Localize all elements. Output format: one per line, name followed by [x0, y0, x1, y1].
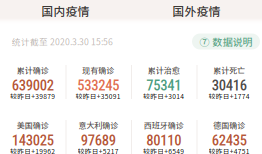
- staticText: 数据说明: [212, 34, 252, 49]
- staticText: 较昨日+1774: [209, 91, 250, 101]
- staticText: 较昨日+4751: [209, 146, 250, 154]
- staticText: 较昨日+19962: [10, 146, 55, 154]
- staticText: 80110: [146, 132, 181, 149]
- staticText: 30416: [212, 77, 247, 94]
- staticText: 639002: [12, 77, 54, 94]
- staticText: 62435: [212, 132, 247, 149]
- staticText: 国内疫情: [41, 2, 89, 19]
- staticText: 西班牙确诊: [144, 119, 184, 131]
- staticText: 97689: [81, 132, 116, 149]
- staticText: 美国确诊: [17, 119, 49, 131]
- button[interactable]: ⑦: [192, 33, 260, 49]
- staticText: 累计死亡: [213, 64, 245, 76]
- staticText: 533245: [77, 77, 119, 94]
- staticText: 意大利确诊: [78, 119, 118, 131]
- staticText: 较昨日+5217: [78, 146, 119, 154]
- staticText: 现有确诊: [82, 64, 114, 76]
- staticText: 德国确诊: [213, 119, 245, 131]
- staticText: 较昨日+6549: [143, 146, 184, 154]
- staticText: 累计确诊: [17, 64, 49, 76]
- staticText: 统计截至 2020.3.30 15:56: [12, 35, 113, 48]
- staticText: 较昨日+35091: [76, 91, 121, 101]
- staticText: 累计治愈: [148, 64, 180, 76]
- staticText: 国外疫情: [172, 2, 220, 19]
- staticText: 143025: [12, 132, 54, 149]
- staticText: ⑦: [199, 34, 209, 49]
- staticText: 较昨日+3014: [143, 91, 184, 101]
- staticText: 75341: [146, 77, 181, 94]
- staticText: 较昨日+39879: [10, 91, 55, 101]
